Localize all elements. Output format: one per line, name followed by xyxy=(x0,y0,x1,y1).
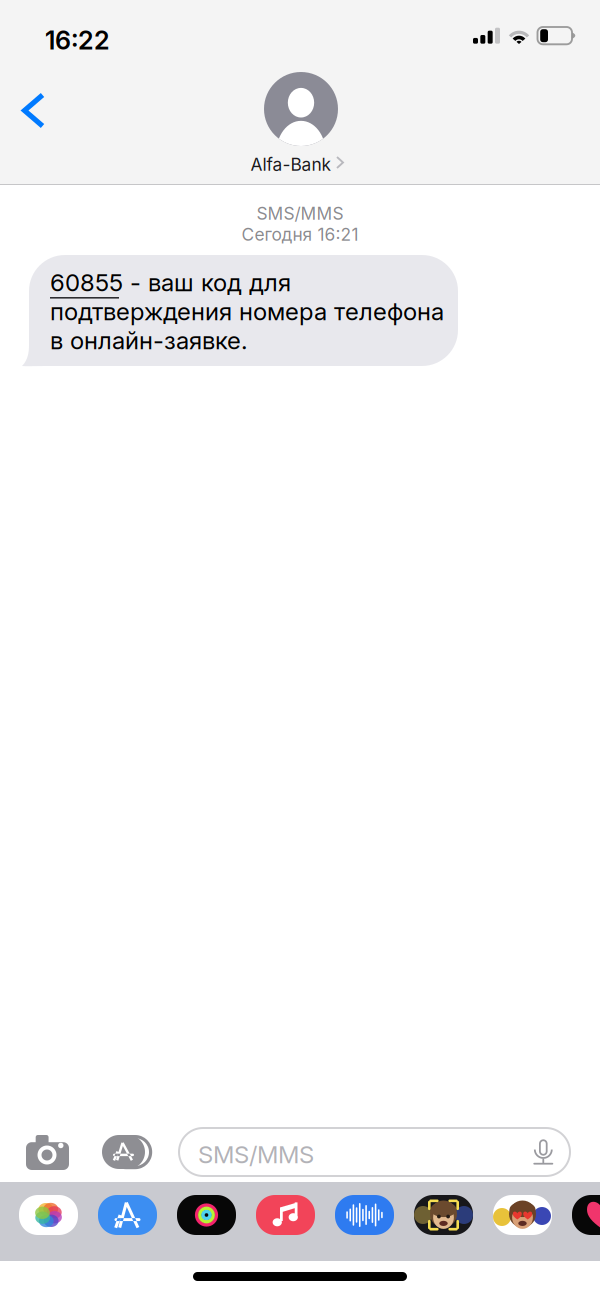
button[interactable]: Music xyxy=(256,1195,315,1235)
button[interactable]: App Store xyxy=(90,1122,162,1182)
button[interactable]: Fitness xyxy=(177,1195,236,1235)
staticText: SMS/MMS xyxy=(256,203,343,224)
button[interactable]: Alfa-Bank xyxy=(206,72,396,174)
button[interactable]: Camera xyxy=(12,1122,84,1182)
button[interactable]: Back xyxy=(0,73,74,147)
staticText: Alfa-Bank xyxy=(250,154,331,175)
button[interactable]: App Store xyxy=(98,1195,157,1235)
button[interactable]: Memoji stickers xyxy=(493,1195,552,1235)
button[interactable]: Audio message xyxy=(335,1195,394,1235)
button[interactable]: Digital Touch xyxy=(572,1195,600,1235)
button[interactable]: Dictate xyxy=(522,1128,566,1176)
button[interactable]: Memoji xyxy=(414,1195,473,1235)
staticText: 16:22 xyxy=(45,25,110,56)
staticText: SMS/MMS xyxy=(198,1140,314,1169)
staticText: 60855 - ваш код для подтверждения номера… xyxy=(50,268,444,355)
button[interactable]: Photos xyxy=(19,1195,78,1235)
staticText: Сегодня 16:21 xyxy=(241,224,358,245)
